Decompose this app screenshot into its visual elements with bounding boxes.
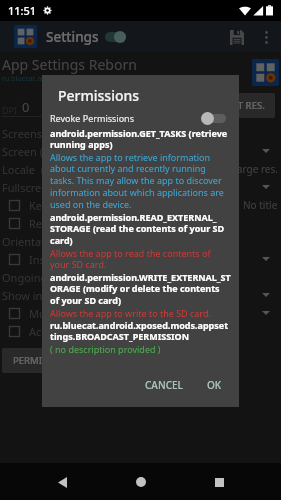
staticText: No title bbox=[243, 198, 278, 212]
staticText: Show in recents bbox=[2, 288, 84, 303]
staticText: Settings bbox=[46, 28, 99, 46]
staticText: Fullscreen bbox=[2, 180, 55, 195]
staticText: CANCEL bbox=[145, 378, 183, 392]
staticText: android.permission.GET_TASKS (retrieve r… bbox=[50, 127, 231, 151]
staticText: OK bbox=[207, 378, 222, 392]
staticText: RESET RES. bbox=[216, 99, 265, 112]
staticText: android.permission.READ_EXTERNAL_​STORAG… bbox=[50, 211, 231, 247]
staticText: 0 bbox=[22, 98, 30, 116]
button[interactable]: Screenshot bbox=[2, 124, 275, 142]
staticText: Ongoing notif bbox=[2, 270, 75, 285]
staticText: Allows the app to write to the SD card. bbox=[50, 307, 211, 319]
button[interactable]: Fullscreen bbox=[2, 178, 275, 196]
button[interactable]: Locale (default) bbox=[2, 160, 275, 178]
staticText: Screenshot bbox=[2, 126, 60, 141]
button[interactable]: PERMISSIONS bbox=[2, 348, 88, 373]
staticText: 11:51 bbox=[8, 3, 37, 18]
button[interactable]: Toggle settings bbox=[105, 31, 126, 43]
button[interactable]: Screen (dp) bbox=[2, 142, 275, 160]
button[interactable]: OK bbox=[200, 372, 229, 398]
button[interactable]: CANCEL bbox=[138, 372, 190, 398]
button[interactable]: Home bbox=[124, 465, 158, 499]
staticText: PERMISSIONS bbox=[13, 354, 77, 367]
staticText: Revoke Permissions bbox=[50, 112, 134, 124]
staticText: Resident bbox=[29, 216, 74, 231]
button[interactable]: Recents bbox=[202, 465, 236, 499]
staticText: ru.bluecat.android.xposed.mods.appsettin… bbox=[50, 319, 231, 343]
button[interactable]: RESET RES. bbox=[206, 93, 275, 118]
staticText: Allows the app to retrieve information a… bbox=[50, 151, 231, 211]
button[interactable]: Ongoing notif bbox=[2, 268, 275, 286]
button[interactable]: Save bbox=[219, 24, 245, 50]
button[interactable]: More options bbox=[254, 25, 278, 49]
staticText: Locale (default) bbox=[2, 162, 84, 177]
button[interactable]: Orientation bbox=[2, 232, 275, 250]
staticText: ( no description provided ) bbox=[50, 343, 161, 355]
staticText: Screen (dp) bbox=[2, 144, 60, 159]
button[interactable]: Resident bbox=[2, 214, 275, 232]
button[interactable]: Insistent bbox=[2, 250, 275, 268]
button[interactable]: Back bbox=[45, 465, 79, 499]
button[interactable]: Keep bbox=[2, 196, 275, 214]
staticText: ru.bluecat.android.xposed.mods.appsettin… bbox=[2, 74, 150, 84]
staticText: Orientation bbox=[2, 234, 62, 249]
staticText: xlarge res. bbox=[229, 162, 278, 176]
staticText: android.permission.WRITE_EXTERNAL_STORAG… bbox=[50, 271, 231, 307]
staticText: Permissions bbox=[58, 86, 140, 105]
staticText: Allows the app to read the contents of y… bbox=[50, 247, 231, 271]
staticText: DPI bbox=[2, 104, 18, 116]
button[interactable]: Mute bbox=[2, 304, 275, 322]
button[interactable]: Revoke Permissions bbox=[50, 109, 228, 127]
staticText: Keep bbox=[29, 198, 55, 213]
staticText: Insistent bbox=[29, 252, 74, 267]
staticText: Access bbox=[29, 324, 64, 339]
button[interactable]: Show in recents bbox=[2, 286, 275, 304]
button[interactable]: Access bbox=[2, 322, 275, 340]
staticText: Mute bbox=[29, 306, 56, 321]
staticText: App Settings Reborn bbox=[2, 55, 137, 74]
